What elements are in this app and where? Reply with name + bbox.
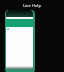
staticText: Live Help	[23, 3, 41, 8]
